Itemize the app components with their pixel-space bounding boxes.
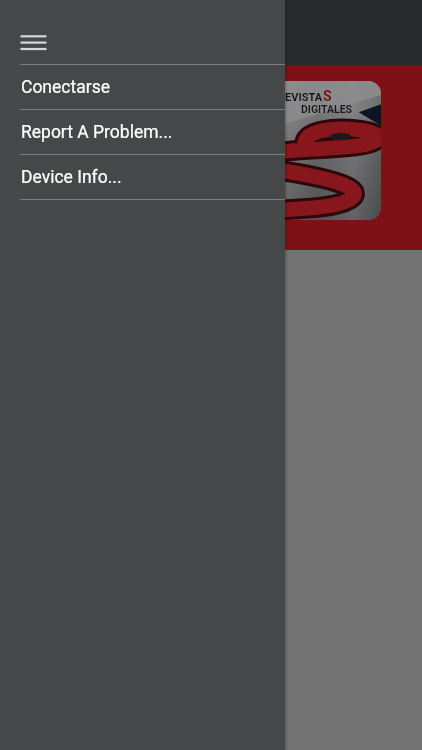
- staticText: Conectarse: [21, 77, 110, 98]
- staticText: S: [323, 88, 332, 104]
- staticText: Report A Problem...: [21, 122, 173, 143]
- button[interactable]: Report A Problem...: [0, 110, 285, 155]
- button[interactable]: Close navigation menu: [14, 24, 52, 58]
- button[interactable]: Conectarse: [0, 65, 285, 110]
- staticText: DIGITALES: [301, 103, 353, 115]
- staticText: Device Info...: [21, 167, 122, 188]
- button[interactable]: Device Info...: [0, 155, 285, 200]
- staticText: REVISTA: [278, 91, 323, 104]
